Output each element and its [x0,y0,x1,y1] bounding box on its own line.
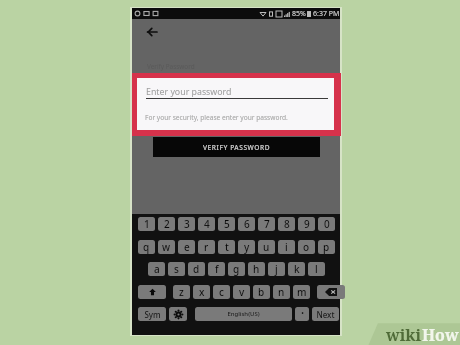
staticText: h [253,262,260,276]
button[interactable]: Shift [138,285,166,299]
button[interactable]: Settings [169,307,187,321]
button[interactable]: Sym [138,307,166,321]
button[interactable]: 0 [318,217,335,231]
button[interactable]: j [268,262,285,276]
staticText: q [143,240,150,254]
staticText: j [275,262,278,276]
button[interactable]: Backspace [317,285,345,299]
button[interactable]: 1 [138,217,155,231]
button[interactable]: c [213,285,230,299]
staticText: v [239,285,245,299]
button[interactable]: d [188,262,205,276]
button[interactable]: k [288,262,305,276]
staticText: English(US) [227,310,260,318]
button[interactable]: 9 [298,217,315,231]
staticText: m [297,285,307,299]
button[interactable]: b [253,285,270,299]
button[interactable]: 3 [178,217,195,231]
staticText: l [315,262,318,276]
staticText: For your security, please enter your pas… [145,113,288,122]
staticText: 2 [164,217,170,231]
staticText: 8 [284,217,290,231]
staticText: 85% [292,9,306,19]
button[interactable]: 2 [158,217,175,231]
staticText: 6 [244,217,250,231]
staticText: z [179,285,184,299]
button[interactable]: 4 [198,217,215,231]
button[interactable]: x [193,285,210,299]
staticText: n [278,285,285,299]
button[interactable]: r [198,240,215,254]
button[interactable]: v [233,285,250,299]
button[interactable]: • [295,307,309,321]
button[interactable]: 5 [218,217,235,231]
button[interactable]: a [148,262,165,276]
staticText: d [193,262,200,276]
staticText: Sym [144,309,161,320]
staticText: g [233,262,240,276]
staticText: wiki [386,324,422,345]
staticText: a [154,262,160,276]
button[interactable]: 7 [258,217,275,231]
staticText: • [301,309,304,319]
staticText: c [219,285,224,299]
staticText: p [323,240,330,254]
staticText: 9 [304,217,310,231]
button[interactable]: t [218,240,235,254]
staticText: b [258,285,265,299]
staticText: k [294,262,300,276]
staticText: 1 [144,217,150,231]
staticText: f [215,262,219,276]
staticText: t [225,240,229,254]
staticText: Next [316,309,335,320]
button[interactable]: p [318,240,335,254]
staticText: 6:37 PM [313,9,340,19]
button[interactable]: i [278,240,295,254]
button[interactable]: u [258,240,275,254]
staticText: Enter your password [146,86,232,98]
staticText: x [199,285,205,299]
staticText: s [174,262,179,276]
staticText: 7 [264,217,270,231]
button[interactable]: s [168,262,185,276]
button[interactable]: w [158,240,175,254]
button[interactable]: m [293,285,310,299]
staticText: y [244,240,250,254]
button[interactable]: 6 [238,217,255,231]
staticText: 4 [204,217,210,231]
staticText: e [184,240,190,254]
staticText: u [263,240,270,254]
button[interactable]: q [138,240,155,254]
button[interactable]: e [178,240,195,254]
button[interactable]: o [298,240,315,254]
button[interactable]: g [228,262,245,276]
button[interactable]: VERIFY PASSWORD [153,137,320,157]
button[interactable]: 8 [278,217,295,231]
staticText: w [162,240,171,254]
staticText: 0 [324,217,330,231]
button[interactable]: y [238,240,255,254]
staticText: VERIFY PASSWORD [203,143,271,152]
button[interactable]: Next [312,307,339,321]
button[interactable]: f [208,262,225,276]
staticText: o [303,240,310,254]
button[interactable]: n [273,285,290,299]
staticText: How [422,324,459,345]
button[interactable]: h [248,262,265,276]
staticText: 3 [184,217,190,231]
staticText: i [285,240,288,254]
staticText: 5 [224,217,230,231]
button[interactable]: l [308,262,325,276]
staticText: r [204,240,209,254]
button[interactable]: z [173,285,190,299]
button[interactable]: English(US) [195,307,292,321]
button[interactable]: Back [141,21,163,43]
